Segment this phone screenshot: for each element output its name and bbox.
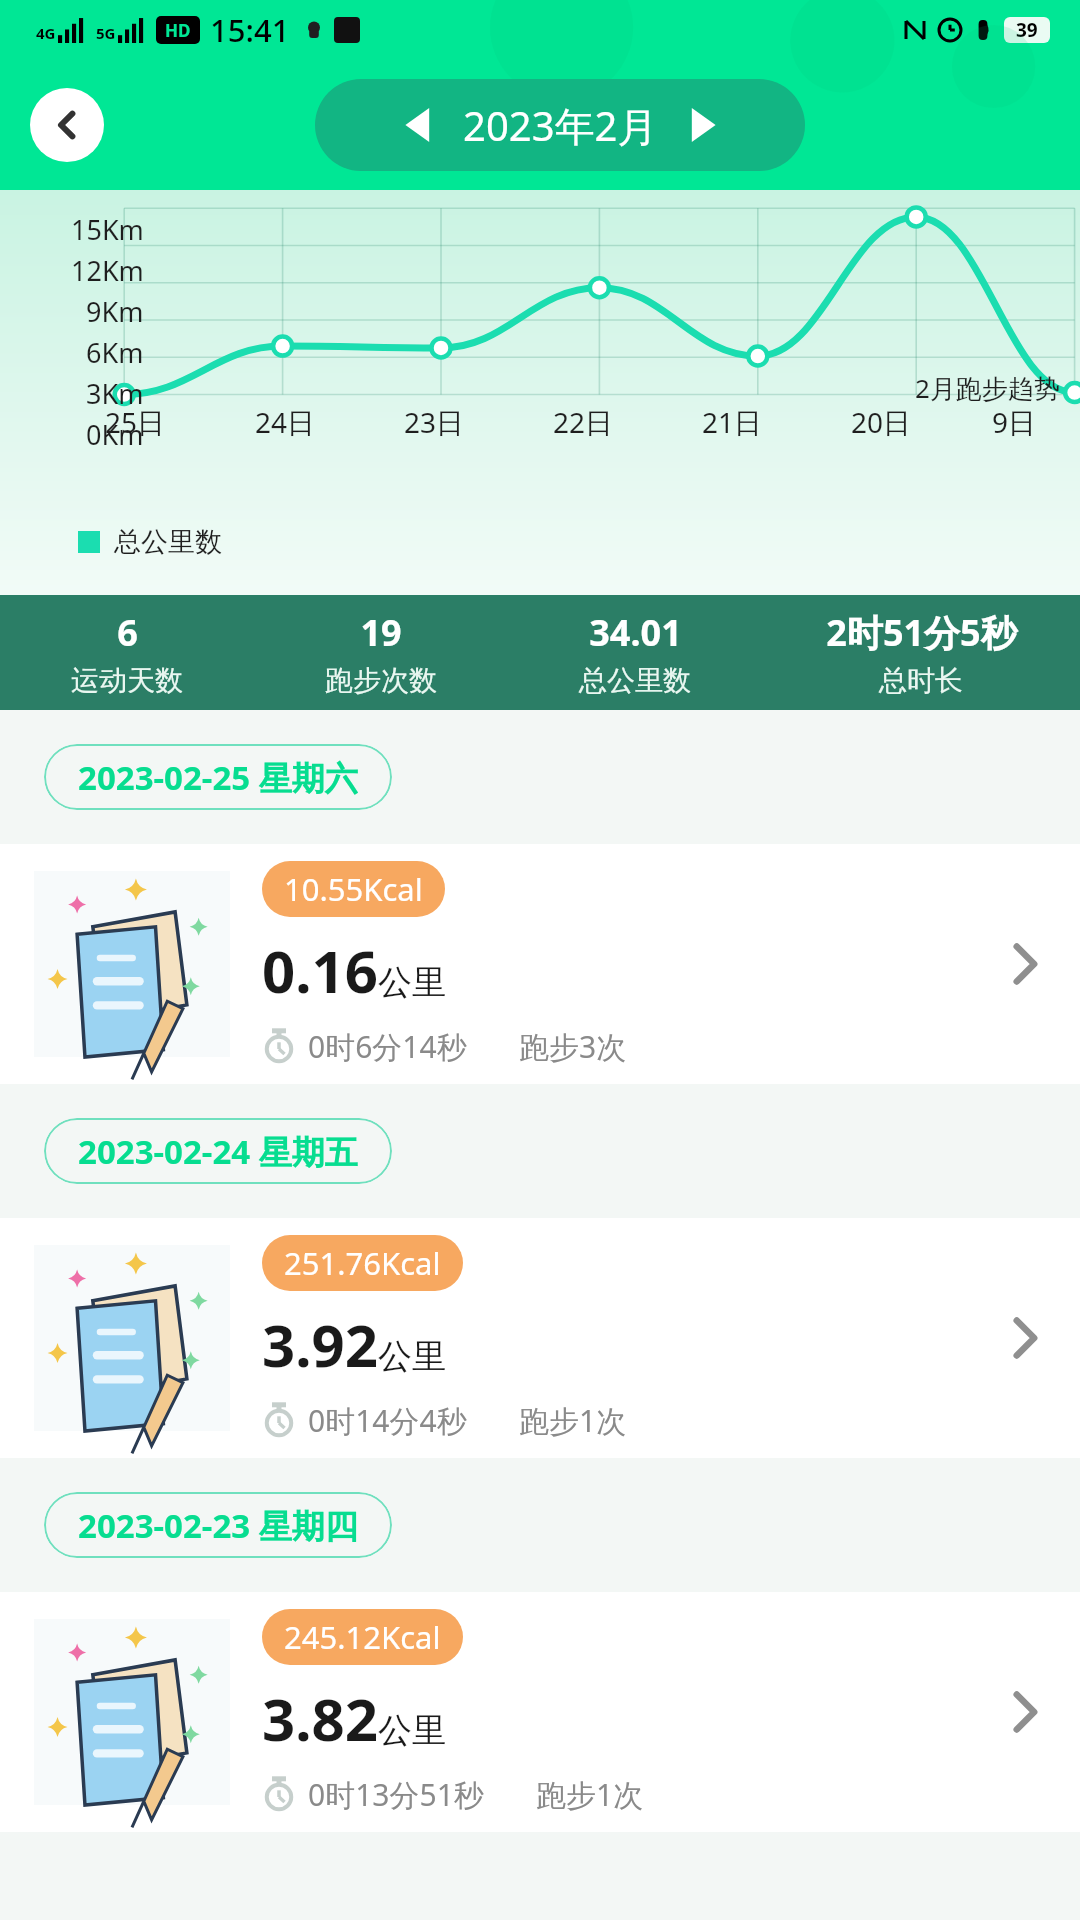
staticText: 5G xyxy=(96,23,116,43)
staticText: 24日 xyxy=(255,403,316,441)
button[interactable]: Back xyxy=(30,88,104,162)
staticText: 12Km xyxy=(71,252,144,289)
staticText: 6 xyxy=(117,608,138,657)
staticText: 245.12Kcal xyxy=(284,1616,441,1658)
staticText: 2023-02-23 星期四 xyxy=(78,1503,358,1548)
staticText: 23日 xyxy=(404,403,465,441)
staticText: 0Km xyxy=(86,416,144,453)
button[interactable]: Next month xyxy=(670,93,734,157)
staticText: 跑步次数 xyxy=(325,663,437,698)
staticText: 0时6分14秒 xyxy=(308,1026,467,1067)
staticText: 10.55Kcal xyxy=(284,868,423,910)
staticText: 3.92 xyxy=(262,1305,378,1384)
button[interactable]: 2023-02-23 星期四 xyxy=(44,1492,392,1558)
staticText: 总时长 xyxy=(879,663,963,698)
staticText: 2时51分5秒 xyxy=(826,608,1017,657)
staticText: 3.82 xyxy=(262,1679,378,1758)
button[interactable]: Previous month xyxy=(387,93,451,157)
staticText: 2023年2月 xyxy=(463,98,658,153)
staticText: 跑步3次 xyxy=(519,1026,627,1067)
staticText: 0.16 xyxy=(262,931,378,1010)
button[interactable]: Previous month xyxy=(315,79,805,171)
staticText: HD xyxy=(165,19,191,42)
button[interactable]: 2023-02-24 星期五 xyxy=(44,1118,392,1184)
button[interactable]: 251.76Kcal xyxy=(0,1218,1080,1458)
staticText: 0时14分4秒 xyxy=(308,1400,467,1441)
staticText: 总公里数 xyxy=(114,525,222,559)
staticText: 19 xyxy=(360,608,402,657)
staticText: 公里 xyxy=(378,1709,446,1752)
staticText: 15:41 xyxy=(210,9,290,51)
staticText: 跑步1次 xyxy=(536,1774,644,1815)
button[interactable]: 245.12Kcal xyxy=(0,1592,1080,1832)
button[interactable]: 10.55Kcal xyxy=(0,844,1080,1084)
staticText: 9Km xyxy=(86,293,144,330)
staticText: 6Km xyxy=(86,334,144,371)
staticText: 251.76Kcal xyxy=(284,1242,441,1284)
staticText: 公里 xyxy=(378,1335,446,1378)
staticText: 2023-02-24 星期五 xyxy=(78,1129,358,1174)
staticText: 2023-02-25 星期六 xyxy=(78,755,358,800)
staticText: 22日 xyxy=(553,403,614,441)
staticText: 公里 xyxy=(378,961,446,1004)
staticText: 4G xyxy=(36,23,56,43)
staticText: 20日 xyxy=(851,403,912,441)
staticText: 9日 xyxy=(992,403,1037,441)
staticText: 2月跑步趋势 xyxy=(915,370,1060,406)
staticText: 34.01 xyxy=(589,608,682,657)
staticText: 0时13分51秒 xyxy=(308,1774,484,1815)
staticText: 39 xyxy=(1016,17,1038,43)
staticText: 运动天数 xyxy=(71,663,183,698)
staticText: 25日 xyxy=(105,403,166,441)
button[interactable]: 2023-02-25 星期六 xyxy=(44,744,392,810)
staticText: 总公里数 xyxy=(579,663,691,698)
staticText: 15Km xyxy=(71,211,144,248)
staticText: 跑步1次 xyxy=(519,1400,627,1441)
staticText: 3Km xyxy=(86,375,144,412)
staticText: 21日 xyxy=(702,403,763,441)
